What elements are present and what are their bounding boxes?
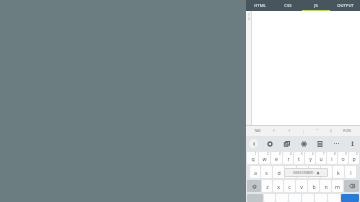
- button[interactable]: b: [308, 180, 319, 192]
- button[interactable]: HTML: [246, 0, 274, 11]
- button[interactable]: y: [305, 152, 315, 164]
- staticText: l: [350, 169, 352, 176]
- button[interactable]: k: [333, 166, 344, 178]
- button[interactable]: Collapse toolbar: [249, 139, 258, 148]
- staticText: b: [312, 183, 316, 190]
- staticText: z: [266, 183, 269, 190]
- button[interactable]: Shift: [247, 180, 261, 192]
- staticText: 0: [356, 152, 358, 156]
- button[interactable]: JS: [302, 0, 330, 11]
- button[interactable]: q: [247, 152, 258, 164]
- button[interactable]: p: [349, 152, 359, 164]
- button[interactable]: w: [259, 152, 270, 164]
- staticText: (: [273, 128, 275, 133]
- button[interactable]: (: [266, 125, 281, 136]
- button[interactable]: Backspace: [344, 180, 359, 192]
- button[interactable]: ): [281, 125, 296, 136]
- staticText: 4: [290, 152, 292, 156]
- staticText: a: [254, 169, 257, 176]
- button[interactable]: More options: [331, 138, 342, 149]
- staticText: e: [275, 155, 278, 162]
- staticText: i: [331, 155, 333, 162]
- button[interactable]: t: [294, 152, 304, 164]
- button[interactable]: SUBSCRIBED: [284, 168, 328, 177]
- staticText: 9: [345, 152, 347, 156]
- button[interactable]: RUN: [338, 125, 355, 136]
- staticText: v: [300, 183, 303, 190]
- staticText: t: [298, 155, 300, 162]
- staticText: CSS: [284, 3, 292, 9]
- button[interactable]: CSS: [274, 0, 302, 11]
- button[interactable]: OUTPUT: [330, 0, 360, 11]
- staticText: r: [287, 155, 290, 162]
- staticText: 7: [323, 152, 325, 156]
- staticText: j: [326, 169, 328, 176]
- button[interactable]: i: [327, 152, 337, 164]
- button[interactable]: s: [261, 166, 272, 178]
- staticText: h: [313, 169, 317, 176]
- button[interactable]: d: [273, 166, 284, 178]
- staticText: o: [341, 155, 345, 162]
- button[interactable]: GIF: [298, 138, 309, 149]
- staticText: TAB: [254, 128, 261, 133]
- button[interactable]: {: [324, 125, 338, 136]
- button[interactable]: e: [271, 152, 282, 164]
- staticText: ": [316, 128, 318, 133]
- staticText: ;: [303, 128, 304, 133]
- staticText: d: [277, 169, 281, 176]
- button[interactable]: f: [285, 166, 296, 178]
- staticText: HTML: [254, 3, 266, 9]
- staticText: ): [288, 128, 290, 133]
- button[interactable]: g: [297, 166, 308, 178]
- staticText: 1: [255, 152, 257, 156]
- staticText: 6: [312, 152, 314, 156]
- button[interactable]: TAB: [248, 125, 266, 136]
- button[interactable]: Stickers: [281, 138, 292, 149]
- staticText: 5: [301, 152, 303, 156]
- button[interactable]: v: [296, 180, 307, 192]
- staticText: q: [251, 155, 255, 162]
- button[interactable]: z: [262, 180, 272, 192]
- button[interactable]: Voice input: [348, 139, 357, 148]
- button[interactable]: Enter: [341, 194, 359, 202]
- button[interactable]: n: [320, 180, 331, 192]
- button[interactable]: o: [338, 152, 348, 164]
- staticText: 3: [279, 152, 281, 156]
- staticText: s: [265, 169, 268, 176]
- button[interactable]: x: [273, 180, 283, 192]
- staticText: 8: [334, 152, 336, 156]
- button[interactable]: j: [321, 166, 332, 178]
- button[interactable]: m: [332, 180, 343, 192]
- button[interactable]: ;: [296, 125, 310, 136]
- staticText: m: [335, 183, 340, 190]
- staticText: w: [262, 155, 267, 162]
- button[interactable]: c: [284, 180, 295, 192]
- staticText: OUTPUT: [337, 3, 354, 9]
- staticText: k: [337, 169, 340, 176]
- button[interactable]: ": [310, 125, 324, 136]
- staticText: 2: [267, 152, 269, 156]
- button[interactable]: h: [309, 166, 320, 178]
- staticText: 2: [248, 17, 250, 21]
- staticText: p: [352, 155, 356, 162]
- button[interactable]: a: [250, 166, 260, 178]
- staticText: n: [324, 183, 328, 190]
- button[interactable]: r: [283, 152, 293, 164]
- staticText: y: [309, 155, 312, 162]
- staticText: u: [319, 155, 323, 162]
- button[interactable]: u: [316, 152, 326, 164]
- staticText: g: [301, 169, 305, 176]
- button[interactable]: Keyboard settings: [264, 138, 275, 149]
- button[interactable]: Clipboard: [314, 138, 325, 149]
- staticText: c: [288, 183, 291, 190]
- button[interactable]: l: [345, 166, 356, 178]
- staticText: SUBSCRIBED: [293, 170, 314, 175]
